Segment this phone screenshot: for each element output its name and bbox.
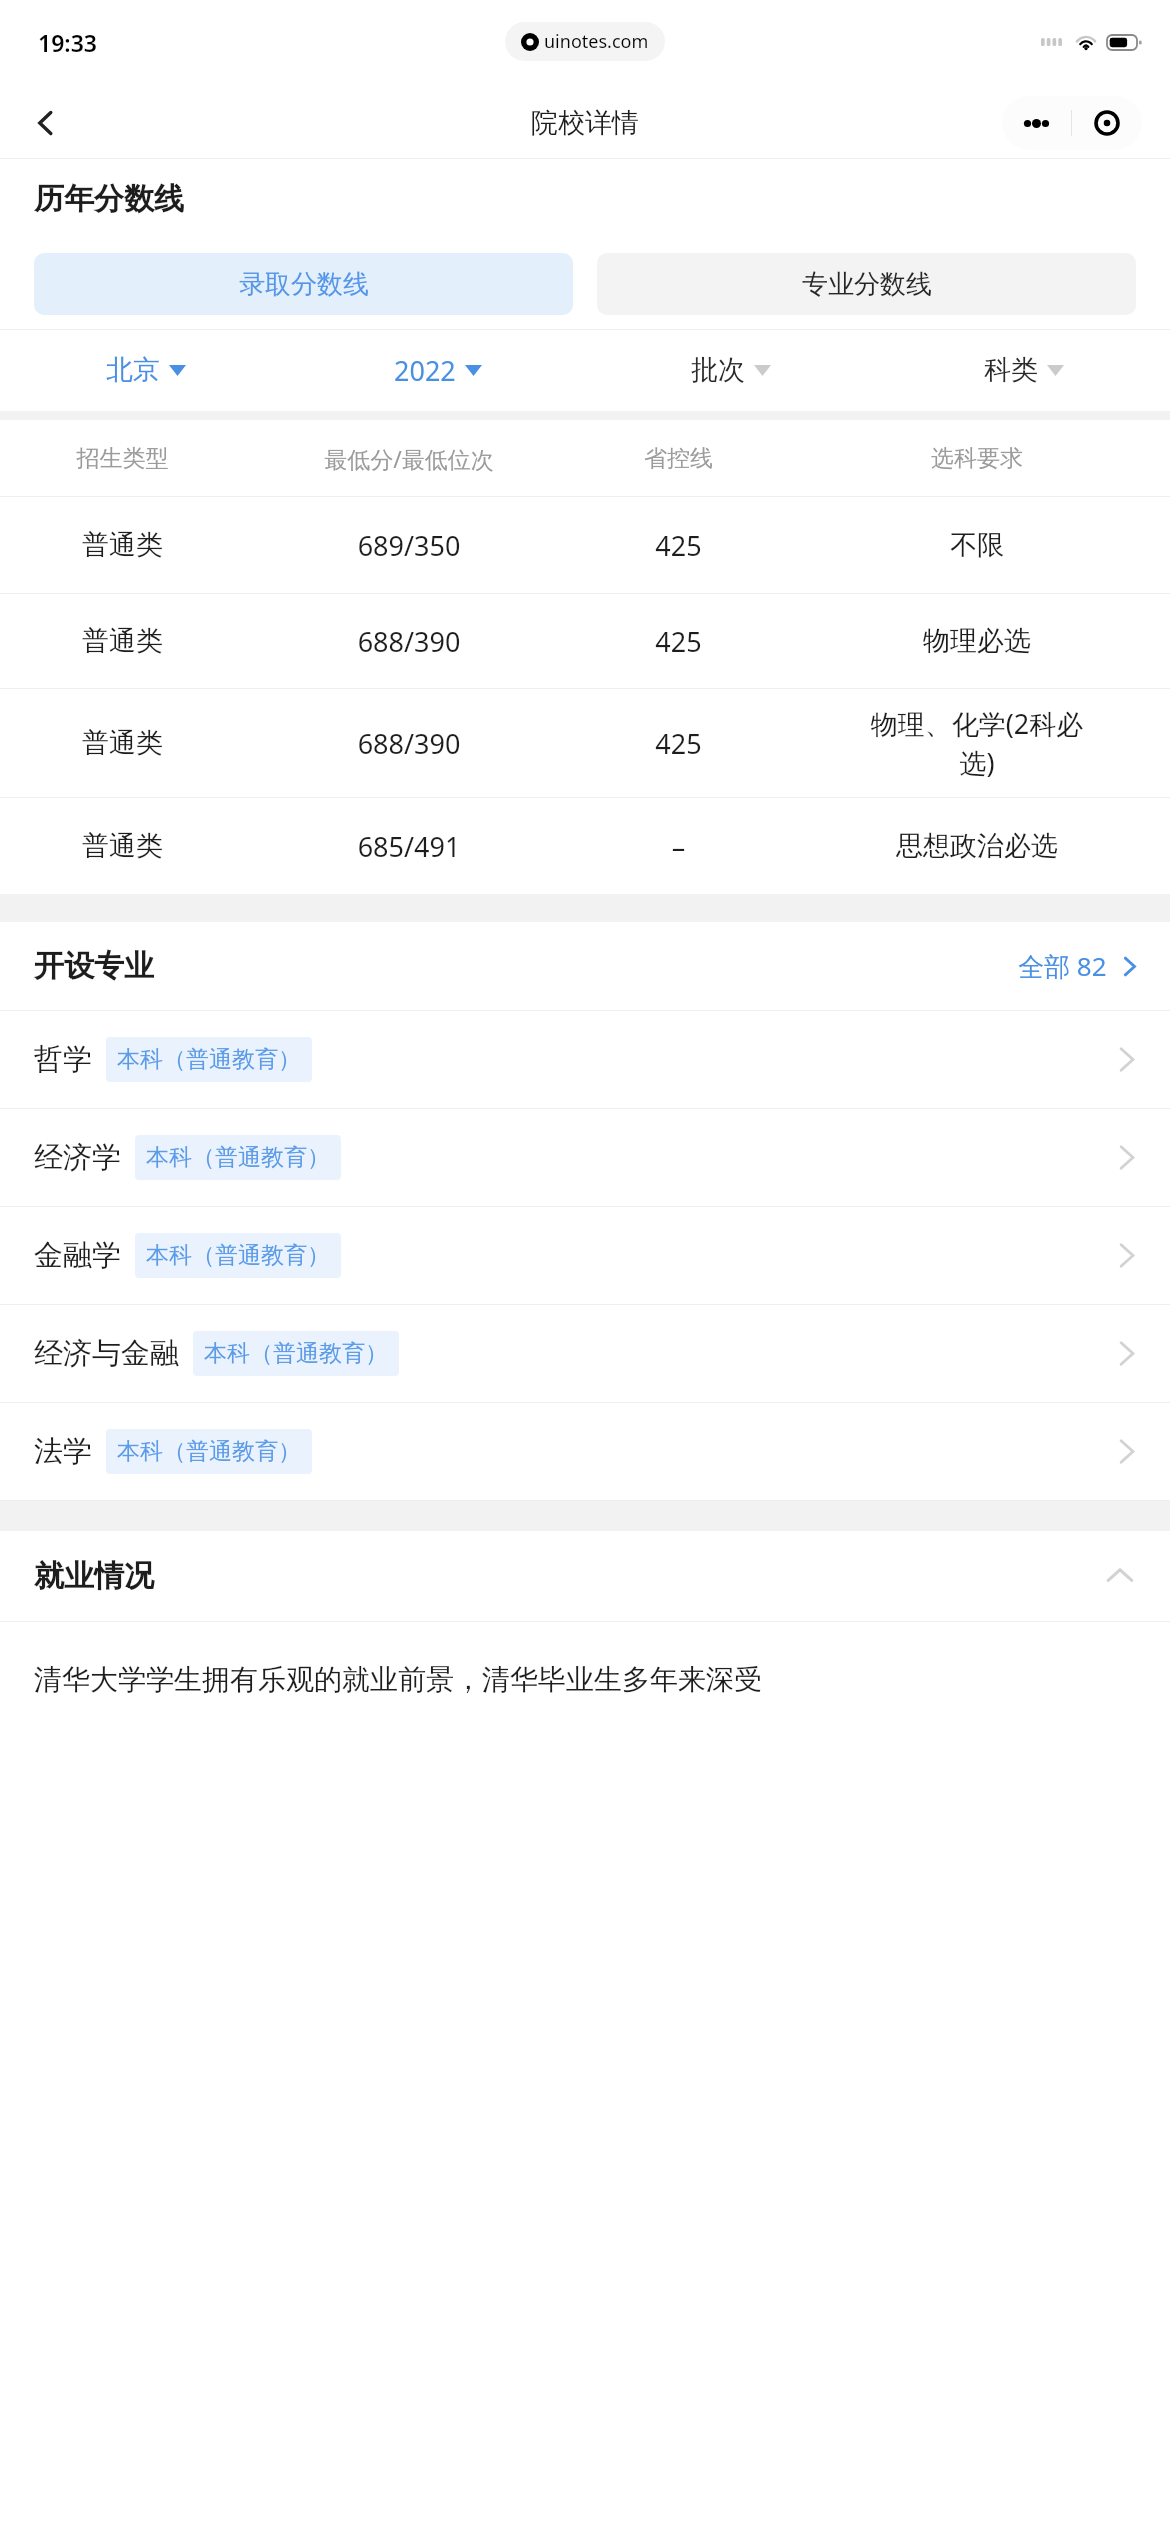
- staticText: 全部 82: [1018, 948, 1107, 984]
- staticText: 本科（普通教育）: [204, 1339, 388, 1368]
- staticText: 425: [573, 623, 784, 660]
- staticText: 本科（普通教育）: [117, 1045, 301, 1074]
- staticText: 录取分数线: [239, 268, 369, 301]
- button[interactable]: 普通类: [0, 594, 1170, 688]
- staticText: 思想政治必选: [784, 829, 1170, 863]
- button[interactable]: 2022: [292, 329, 584, 411]
- button[interactable]: 经济学: [0, 1109, 1170, 1206]
- staticText: 普通类: [0, 624, 245, 658]
- staticText: 院校详情: [531, 106, 639, 140]
- button[interactable]: 专业分数线: [597, 253, 1136, 315]
- staticText: 688/390: [245, 623, 573, 660]
- staticText: 物理必选: [784, 624, 1170, 658]
- staticText: 科类: [984, 353, 1038, 387]
- staticText: 法学: [34, 1433, 92, 1470]
- staticText: 688/390: [245, 725, 573, 762]
- staticText: 普通类: [0, 829, 245, 863]
- button[interactable]: 全部 82: [1012, 938, 1146, 994]
- button[interactable]: 北京: [0, 329, 292, 411]
- staticText: 就业情况: [34, 1557, 154, 1595]
- staticText: 金融学: [34, 1237, 121, 1274]
- button[interactable]: 金融学: [0, 1207, 1170, 1304]
- staticText: 425: [573, 527, 784, 564]
- staticText: 本科（普通教育）: [117, 1437, 301, 1466]
- staticText: 经济学: [34, 1139, 121, 1176]
- staticText: 2022: [394, 352, 456, 389]
- staticText: 普通类: [0, 528, 245, 562]
- staticText: 本科（普通教育）: [146, 1241, 330, 1270]
- staticText: 专业分数线: [802, 268, 932, 301]
- staticText: 历年分数线: [34, 180, 184, 218]
- staticText: 批次: [691, 353, 745, 387]
- staticText: 选科要求: [784, 444, 1170, 473]
- button[interactable]: 普通类: [0, 798, 1170, 894]
- button[interactable]: 普通类: [0, 689, 1170, 797]
- staticText: –: [573, 828, 784, 865]
- staticText: 685/491: [245, 828, 573, 865]
- staticText: 不限: [784, 528, 1170, 562]
- staticText: 普通类: [0, 726, 245, 760]
- staticText: 物理、化学(2科必 选): [784, 705, 1170, 781]
- staticText: 最低分/最低位次: [245, 443, 573, 474]
- button[interactable]: 经济与金融: [0, 1305, 1170, 1402]
- button[interactable]: Back: [16, 93, 76, 153]
- staticText: 清华大学学生拥有乐观的就业前景，清华毕业生多年来深受: [34, 1662, 762, 1697]
- staticText: 哲学: [34, 1041, 92, 1078]
- staticText: 北京: [106, 353, 160, 387]
- staticText: 本科（普通教育）: [146, 1143, 330, 1172]
- button[interactable]: 法学: [0, 1403, 1170, 1500]
- staticText: 招生类型: [0, 444, 245, 473]
- button[interactable]: More options: [1002, 96, 1071, 150]
- button[interactable]: Collapse: [1098, 1554, 1142, 1598]
- staticText: 425: [573, 725, 784, 762]
- button[interactable]: 批次: [584, 329, 877, 411]
- staticText: uinotes.com: [544, 29, 649, 54]
- button[interactable]: 哲学: [0, 1011, 1170, 1108]
- staticText: 省控线: [573, 444, 784, 473]
- button[interactable]: 录取分数线: [34, 253, 573, 315]
- button[interactable]: Record: [1072, 96, 1142, 150]
- staticText: 经济与金融: [34, 1335, 179, 1372]
- button[interactable]: 科类: [877, 329, 1170, 411]
- staticText: 19:33: [38, 27, 97, 58]
- staticText: 开设专业: [34, 947, 154, 985]
- staticText: 689/350: [245, 527, 573, 564]
- button[interactable]: 普通类: [0, 497, 1170, 593]
